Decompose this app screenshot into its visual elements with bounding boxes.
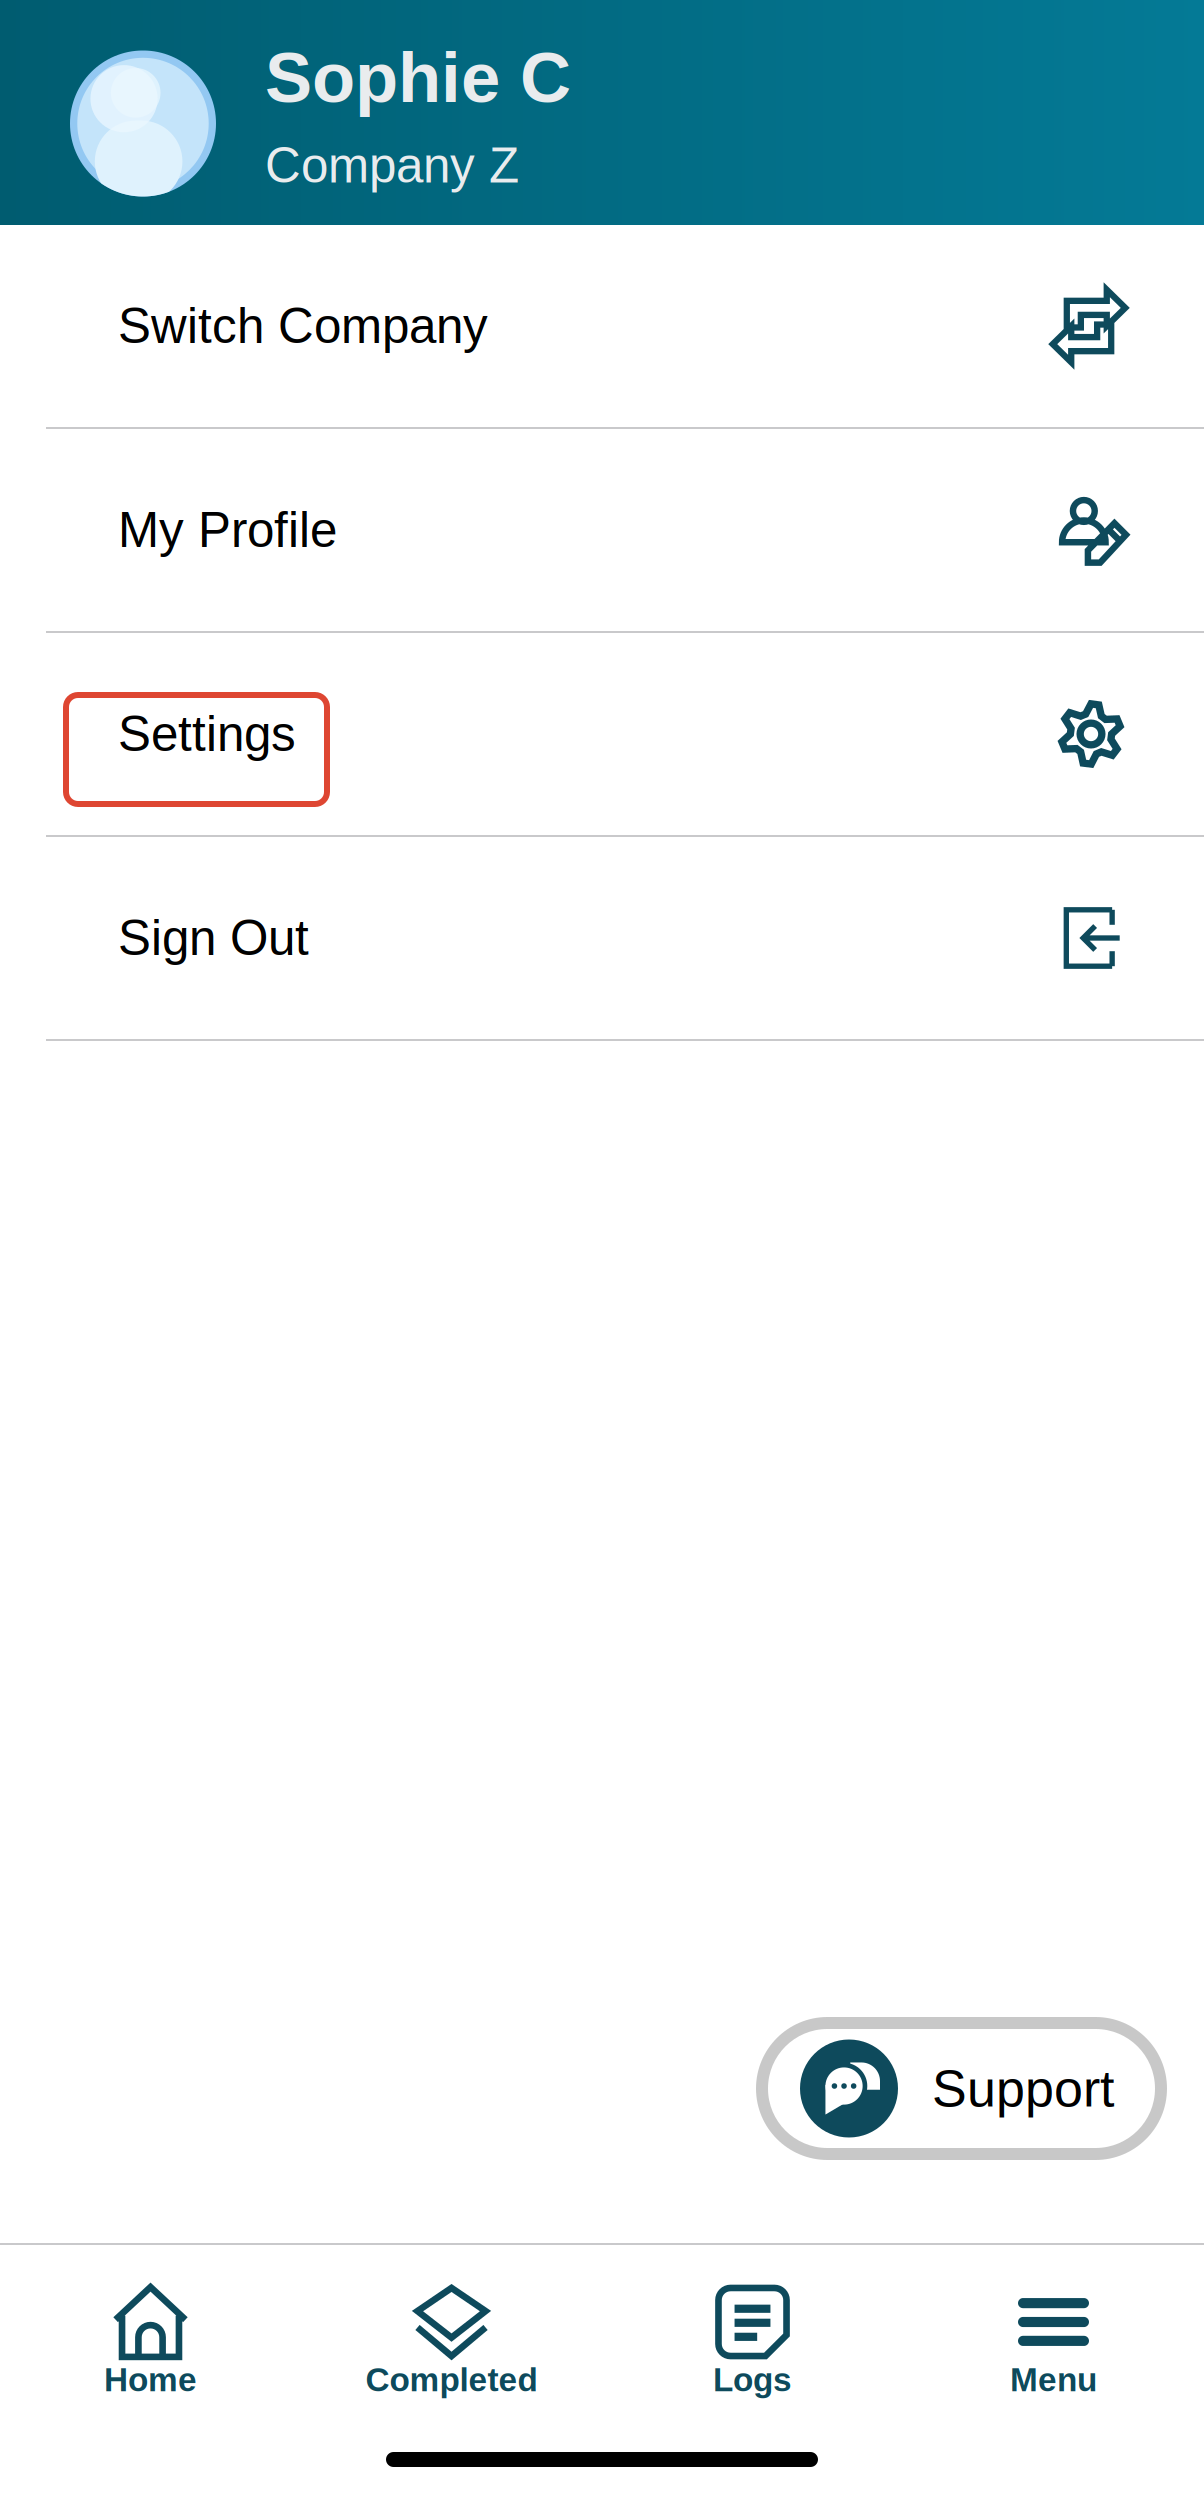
button[interactable]: Completed xyxy=(301,2283,602,2398)
button[interactable]: My Profile xyxy=(0,429,1204,633)
button[interactable]: Sign Out xyxy=(0,837,1204,1041)
button[interactable]: Logs xyxy=(602,2283,903,2398)
staticText: Support xyxy=(932,2059,1114,2118)
staticText: Home xyxy=(104,2361,197,2398)
button[interactable]: Settings xyxy=(0,633,1204,837)
staticText: Completed xyxy=(365,2361,537,2398)
button[interactable]: Support xyxy=(756,2017,1167,2160)
button[interactable]: Menu xyxy=(903,2283,1204,2398)
button[interactable]: Home xyxy=(0,2283,301,2398)
staticText: Settings xyxy=(118,706,296,761)
staticText: Switch Company xyxy=(118,298,488,353)
staticText: Sign Out xyxy=(118,910,309,965)
button[interactable]: Switch Company xyxy=(0,225,1204,429)
staticText: Logs xyxy=(713,2361,792,2398)
staticText: Company Z xyxy=(265,138,519,193)
staticText: Menu xyxy=(1010,2361,1097,2398)
staticText: My Profile xyxy=(118,502,337,557)
staticText: Sophie C xyxy=(265,38,571,117)
